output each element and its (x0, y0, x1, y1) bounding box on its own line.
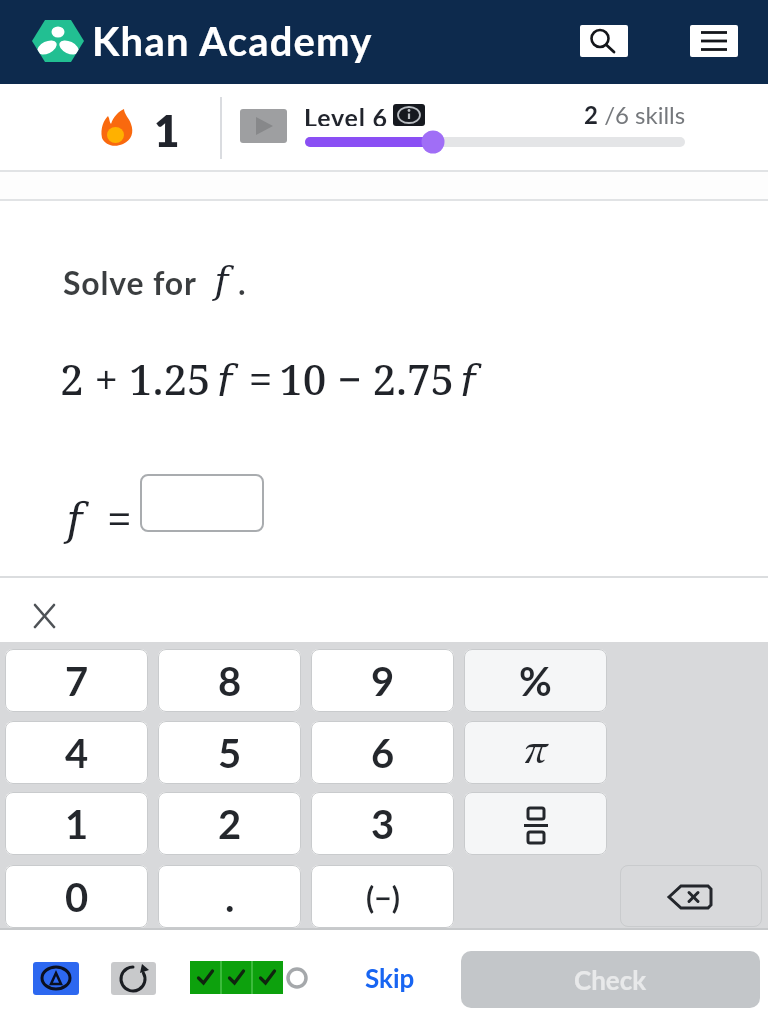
staticText: 6 (371, 729, 395, 777)
staticText: 1 (154, 104, 180, 150)
staticText: 3 (371, 800, 395, 848)
staticText: 2 (584, 100, 598, 126)
staticText: 𝑓 (209, 263, 238, 301)
staticText: 9 (371, 657, 395, 705)
staticText: Solve for (63, 263, 205, 301)
staticText: 8 (218, 657, 242, 705)
staticText: 𝑓 = (60, 488, 132, 546)
staticText: Skip (365, 962, 415, 992)
staticText: Khan Academy (92, 17, 373, 63)
staticText: 2 + 1.25𝑓 = 10 − 2.75𝑓 (60, 350, 486, 396)
staticText: Level 6 (304, 102, 388, 126)
staticText: . (225, 873, 235, 921)
staticText: Check (574, 964, 647, 995)
staticText: /6 skills (598, 100, 686, 126)
staticText: . (238, 263, 246, 301)
staticText: 1 (65, 800, 89, 848)
staticText: % (519, 657, 552, 705)
staticText: π (524, 733, 548, 773)
staticText: 4 (65, 729, 89, 777)
staticText: 7 (65, 657, 89, 705)
staticText: (−) (366, 879, 400, 915)
staticText: 0 (65, 873, 89, 921)
staticText: 5 (218, 729, 242, 777)
staticText: 2 (218, 800, 242, 848)
